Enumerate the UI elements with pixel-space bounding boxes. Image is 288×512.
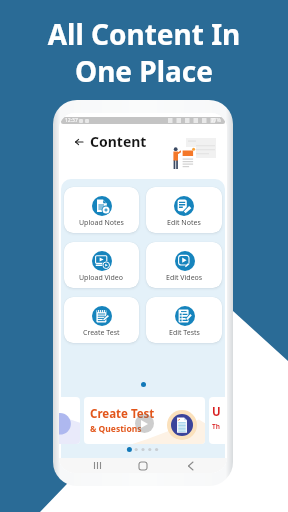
button[interactable]: Edit Videos <box>146 242 222 288</box>
button[interactable]: Back <box>181 458 199 473</box>
button[interactable]: U <box>209 397 227 444</box>
staticText: Create Test <box>90 406 155 422</box>
staticText: Edit Notes <box>167 218 201 228</box>
button[interactable]: Home <box>134 458 152 473</box>
staticText: Upload Notes <box>79 218 124 228</box>
button[interactable]: Play <box>135 414 154 433</box>
staticText: Content <box>90 132 147 151</box>
button[interactable]: Create Test <box>84 397 205 444</box>
button[interactable]: Create Test <box>64 297 139 343</box>
button[interactable]: Edit Notes <box>146 187 222 233</box>
button[interactable]: Edit Tests <box>146 297 222 343</box>
button[interactable]: Upload Video <box>64 242 139 288</box>
button[interactable]: Upload Notes <box>64 187 139 233</box>
staticText: All Content In One Place <box>0 15 288 90</box>
button[interactable]: Recents <box>88 458 106 473</box>
staticText: Edit Tests <box>169 328 200 338</box>
staticText: Edit Videos <box>166 273 203 283</box>
button[interactable] <box>59 397 80 444</box>
staticText: & Questions <box>90 423 142 435</box>
staticText: 12:37 <box>65 117 78 124</box>
button[interactable]: Back <box>71 134 86 149</box>
staticText: U <box>212 404 221 420</box>
staticText: Upload Video <box>79 273 124 283</box>
staticText: 77% <box>211 117 221 124</box>
staticText: Th <box>212 422 220 431</box>
staticText: Create Test <box>83 328 120 338</box>
